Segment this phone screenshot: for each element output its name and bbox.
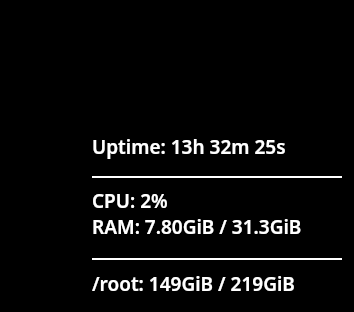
button[interactable]: Uptime: 13h 32m 25s: [92, 134, 342, 160]
staticText: /root: 149GiB / 219GiB: [92, 271, 342, 297]
staticText: Uptime: 13h 32m 25s: [92, 134, 342, 160]
button[interactable]: CPU: 2%: [92, 188, 342, 240]
staticText: CPU: 2%: [92, 188, 342, 214]
button[interactable]: /root: 149GiB / 219GiB: [92, 271, 342, 297]
staticText: RAM: 7.80GiB / 31.3GiB: [92, 214, 342, 240]
